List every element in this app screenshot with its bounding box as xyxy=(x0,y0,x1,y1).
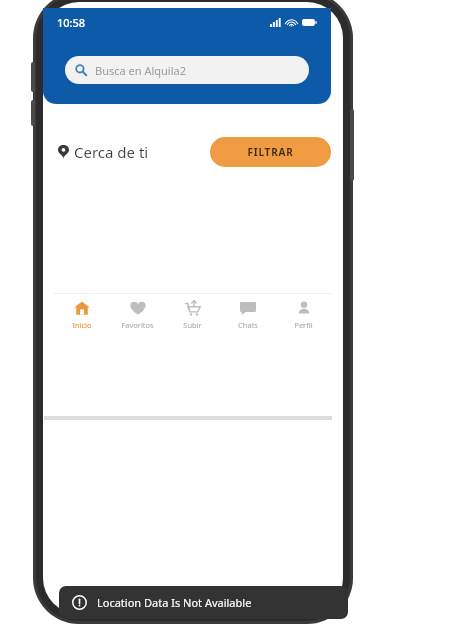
staticText: Favoritos xyxy=(121,320,154,330)
button[interactable]: Subir xyxy=(165,294,220,340)
staticText: Subir xyxy=(183,320,202,330)
staticText: Perfil xyxy=(294,320,313,330)
staticText: 10:58 xyxy=(57,15,86,30)
button[interactable]: Favoritos xyxy=(110,294,165,340)
button[interactable]: Chats xyxy=(220,294,275,340)
staticText: Busca en Alquila2 xyxy=(95,63,186,78)
staticText: Location Data Is Not Available xyxy=(97,595,252,610)
staticText: Chats xyxy=(238,320,258,330)
staticText: FILTRAR xyxy=(247,145,294,159)
button[interactable]: Busca en Alquila2 xyxy=(65,56,309,84)
staticText: Inicio xyxy=(72,320,92,330)
button[interactable]: Inicio xyxy=(54,294,109,340)
button[interactable]: FILTRAR xyxy=(210,137,331,167)
staticText: Cerca de ti xyxy=(74,142,149,162)
button[interactable]: Perfil xyxy=(276,294,331,340)
